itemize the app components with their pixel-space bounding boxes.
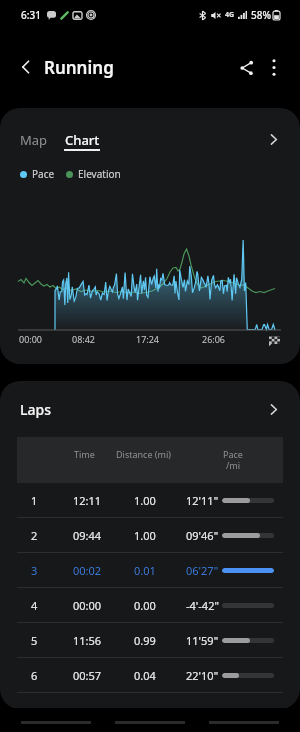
- button[interactable]: 2: [0, 518, 300, 552]
- staticText: 26:06: [202, 333, 226, 345]
- button[interactable]: 1: [0, 483, 300, 517]
- other: Finish: [269, 336, 280, 347]
- staticText: 11:56: [73, 633, 102, 648]
- button[interactable]: Laps: [0, 381, 300, 437]
- staticText: 09'46": [186, 528, 219, 543]
- staticText: 5: [31, 633, 38, 648]
- button[interactable]: 6: [0, 658, 300, 692]
- button[interactable]: 3: [0, 553, 300, 587]
- staticText: 0.04: [134, 668, 156, 683]
- button[interactable]: 4: [0, 588, 300, 622]
- staticText: 12:11: [73, 493, 102, 508]
- staticText: 17:24: [136, 333, 160, 345]
- staticText: Time: [74, 448, 95, 460]
- staticText: -4'-42": [186, 598, 219, 613]
- staticText: 0.00: [134, 598, 156, 613]
- staticText: Running: [44, 56, 114, 79]
- staticText: 1.00: [134, 493, 156, 508]
- button[interactable]: Expand chart: [257, 123, 289, 155]
- staticText: 09:44: [73, 528, 102, 543]
- button[interactable]: More options: [256, 50, 291, 85]
- staticText: 1: [31, 493, 38, 508]
- staticText: 00:00: [19, 333, 43, 345]
- staticText: 22'10": [186, 668, 219, 683]
- button[interactable]: Back: [8, 49, 44, 85]
- staticText: Chart: [65, 131, 100, 149]
- staticText: 4: [31, 598, 38, 613]
- staticText: 00:02: [73, 563, 102, 578]
- staticText: Map: [20, 131, 48, 149]
- staticText: 3: [31, 563, 38, 578]
- staticText: 1.00: [134, 528, 156, 543]
- staticText: 6: [31, 668, 38, 683]
- button[interactable]: Chart: [61, 125, 103, 157]
- staticText: 06'27": [186, 563, 219, 578]
- staticText: Pace /mi: [223, 448, 243, 472]
- staticText: 00:57: [73, 668, 102, 683]
- staticText: 2: [31, 528, 38, 543]
- staticText: 0.99: [134, 633, 156, 648]
- staticText: 58%: [251, 8, 271, 22]
- staticText: 00:00: [73, 598, 102, 613]
- staticText: 0.01: [134, 563, 156, 578]
- staticText: 12'11": [186, 493, 219, 508]
- staticText: 4G: [225, 10, 235, 20]
- staticText: Elevation: [78, 167, 121, 181]
- staticText: Pace: [32, 167, 55, 181]
- staticText: Distance (mi): [116, 448, 171, 460]
- button[interactable]: Share: [228, 49, 265, 86]
- staticText: 6:31: [21, 8, 41, 22]
- button[interactable]: Map: [16, 125, 52, 155]
- button[interactable]: 5: [0, 623, 300, 657]
- staticText: Laps: [20, 400, 51, 419]
- staticText: 08:42: [72, 333, 96, 345]
- staticText: 11'59": [186, 633, 219, 648]
